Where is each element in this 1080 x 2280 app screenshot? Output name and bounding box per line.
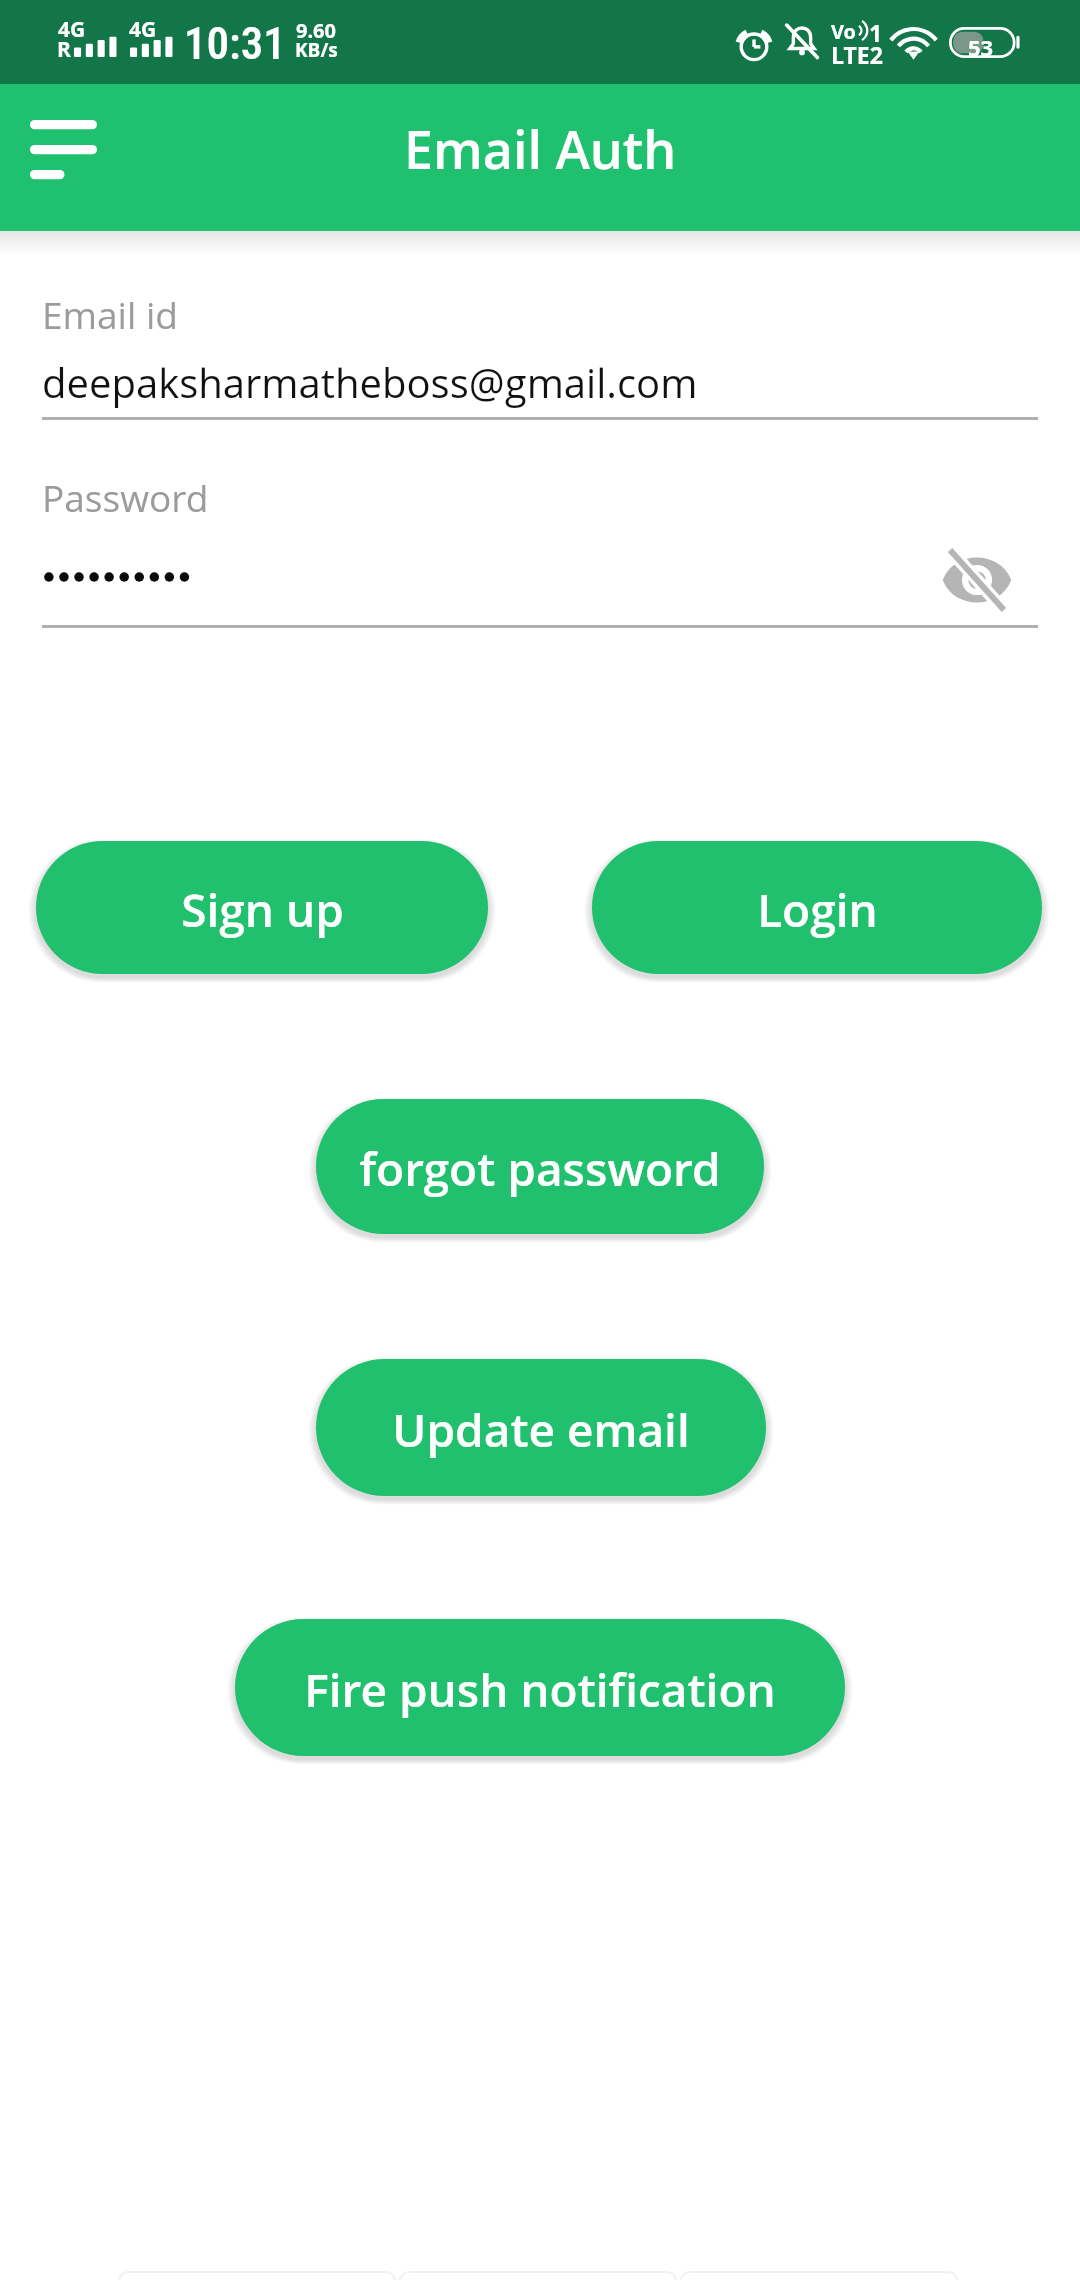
button[interactable]: forgot password	[316, 1099, 764, 1234]
staticText: 10:31	[184, 17, 286, 70]
staticText: Vo	[831, 18, 856, 45]
button[interactable]: Login	[592, 841, 1042, 974]
staticText: 1	[869, 17, 883, 48]
staticText: LTE2	[831, 39, 883, 70]
staticText: 4G	[58, 15, 86, 44]
staticText: Email Auth	[404, 113, 677, 184]
staticText: Email id	[42, 289, 178, 339]
staticText: R	[57, 35, 71, 64]
staticText: 9.60	[296, 17, 336, 44]
staticText: Fire push notification	[304, 1658, 776, 1721]
button[interactable]: Sign up	[36, 841, 488, 974]
staticText: Sign up	[181, 878, 344, 941]
staticText: Login	[757, 878, 878, 941]
button[interactable]: Open navigation menu	[0, 84, 128, 231]
staticText: 4G	[129, 15, 157, 44]
button[interactable]: Toggle password visibility	[934, 537, 1020, 623]
button[interactable]: Fire push notification	[235, 1619, 845, 1756]
staticText: 53	[968, 32, 994, 62]
staticText: Password	[42, 472, 209, 522]
button[interactable]: Update email	[316, 1359, 766, 1496]
staticText: KB/s	[295, 37, 338, 63]
staticText: forgot password	[359, 1137, 721, 1200]
staticText: deepaksharmatheboss@gmail.com	[42, 355, 698, 409]
staticText: Update email	[392, 1398, 690, 1461]
